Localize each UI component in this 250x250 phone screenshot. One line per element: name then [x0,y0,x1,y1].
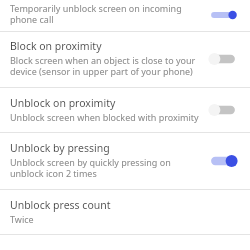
button[interactable]: Block on proximity toggle [202,49,244,69]
button[interactable]: Temporarily unblock on call toggle [202,0,244,14]
staticText: Unblock screen when blocked with proximi… [10,111,199,123]
button[interactable]: Block on proximity [0,32,250,87]
staticText: Twice [10,213,34,225]
staticText: Unblock by pressing [10,141,110,155]
button[interactable]: Unblock by pressing [0,133,250,189]
staticText: Block screen when an object is close to … [10,54,202,78]
staticText: Unblock press count [10,198,111,212]
button[interactable]: Temporarily unblock screen on incoming p… [0,0,250,31]
button[interactable]: Unblock on proximity [0,88,250,132]
staticText: Unblock screen by quickly pressing on un… [10,156,202,180]
button[interactable]: Unblock on proximity toggle [202,100,244,120]
button[interactable]: Unblock by pressing toggle [202,151,244,171]
staticText: Unblock on proximity [10,96,116,110]
staticText: Block on proximity [10,39,102,53]
button[interactable]: Unblock press count [0,190,250,234]
staticText: Temporarily unblock screen on incoming p… [10,2,202,26]
